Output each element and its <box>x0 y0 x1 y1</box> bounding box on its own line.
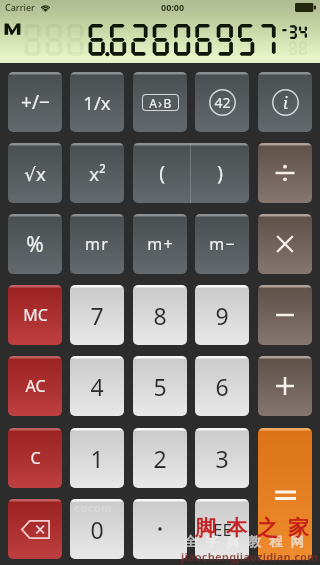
staticText: ) <box>217 160 223 186</box>
button[interactable]: C <box>8 428 62 488</box>
staticText: 00:00 <box>161 1 185 13</box>
button[interactable]: MC <box>8 285 62 345</box>
button[interactable]: AC <box>8 356 62 416</box>
button[interactable]: 1 <box>70 428 124 488</box>
button[interactable]: Info <box>258 72 312 132</box>
button[interactable]: 2 <box>133 428 187 488</box>
staticText: √x <box>24 161 46 186</box>
staticText: 8 <box>153 300 167 331</box>
button[interactable]: m− <box>195 214 249 274</box>
button[interactable]: % <box>8 214 62 274</box>
staticText: EE <box>213 518 232 541</box>
button[interactable] <box>133 499 187 559</box>
staticText: m+ <box>147 233 174 255</box>
staticText: C <box>30 447 41 469</box>
button[interactable]: +/− <box>8 72 62 132</box>
staticText: 全字典教程网 <box>184 533 312 549</box>
button[interactable]: 0 <box>70 499 124 559</box>
staticText: 4 <box>90 371 104 402</box>
button[interactable]: 9 <box>195 285 249 345</box>
staticText: 5 <box>153 371 167 402</box>
button[interactable]: 1/x <box>70 72 124 132</box>
button[interactable]: Backspace <box>8 499 62 559</box>
staticText: mr <box>85 233 109 255</box>
staticText: AC <box>25 375 46 397</box>
staticText: cocom <box>74 500 113 515</box>
staticText: % <box>26 230 44 259</box>
staticText: 42 <box>214 93 231 112</box>
staticText: 1/x <box>83 90 111 115</box>
button[interactable]: 3 <box>195 428 249 488</box>
button[interactable]: 8 <box>133 285 187 345</box>
staticText: MC <box>23 304 48 326</box>
button[interactable]: 6 <box>195 356 249 416</box>
button[interactable]: x² <box>70 143 124 203</box>
button[interactable]: Equals <box>258 428 312 560</box>
button[interactable]: Multiply <box>258 214 312 274</box>
staticText: 7 <box>90 300 104 331</box>
staticText: 脚本之家 <box>190 515 314 541</box>
button[interactable]: 4 <box>70 356 124 416</box>
staticText: ( <box>159 160 165 186</box>
button[interactable]: Base convert <box>133 72 187 132</box>
staticText: i <box>283 92 288 114</box>
button[interactable]: Divide <box>258 143 312 203</box>
staticText: 0 <box>90 514 104 545</box>
staticText: x² <box>89 161 106 186</box>
button[interactable]: ( <box>133 143 190 203</box>
staticText: A›B <box>149 95 173 110</box>
button[interactable]: 5 <box>133 356 187 416</box>
staticText: 9 <box>215 300 229 331</box>
staticText: +/− <box>21 89 50 115</box>
staticText: jiaochengjiaozidian.com <box>181 549 319 564</box>
staticText: 1 <box>90 443 104 474</box>
staticText: 3 <box>215 443 229 474</box>
button[interactable]: √x <box>8 143 62 203</box>
button[interactable]: Minus <box>258 285 312 345</box>
button[interactable]: ) <box>191 143 249 203</box>
button[interactable]: 7 <box>70 285 124 345</box>
button[interactable]: m+ <box>133 214 187 274</box>
button[interactable]: Plus <box>258 356 312 416</box>
button[interactable]: mr <box>70 214 124 274</box>
button[interactable]: Constant 42 <box>195 72 249 132</box>
staticText: 2 <box>153 443 167 474</box>
button[interactable]: EE <box>195 499 249 559</box>
staticText: 6 <box>215 371 229 402</box>
staticText: Carrier <box>5 1 35 13</box>
staticText: m− <box>209 233 236 255</box>
